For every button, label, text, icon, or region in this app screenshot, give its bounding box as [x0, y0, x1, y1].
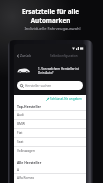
button[interactable]: Alfa Romeo: [14, 173, 86, 182]
staticText: Fiat: [17, 131, 23, 135]
staticText: Individuelle Fahrzeugauswahl: [1, 26, 103, 31]
staticText: Zurück: [20, 53, 31, 58]
button[interactable]: Hersteller suchen: [17, 81, 83, 90]
staticText: Selbstkonfiguration: [50, 54, 78, 58]
button[interactable]: Fiat: [14, 128, 86, 137]
staticText: Ersatzteile für alle Automarken: [0, 7, 102, 25]
button[interactable]: Seat: [14, 137, 86, 146]
staticText: Top-Hersteller: [17, 104, 41, 109]
staticText: Seat: [17, 140, 24, 144]
button[interactable]: Zurück: [16, 53, 31, 58]
staticText: Alfa Romeo: [17, 176, 35, 180]
staticText: Hersteller suchen: [25, 84, 52, 88]
button[interactable]: Audi: [14, 110, 86, 119]
button[interactable]: Volkswagen: [14, 146, 86, 155]
staticText: A: [17, 168, 20, 172]
staticText: 1. Von welchem Hersteller ist Dein Auto?: [38, 67, 79, 75]
staticText: Audi: [17, 113, 24, 117]
staticText: Alle Hersteller: [17, 160, 42, 165]
staticText: Volkswagen: [17, 149, 35, 153]
button[interactable]: Schlüssel-Nr. angeben: [45, 96, 83, 102]
staticText: BMW: [17, 122, 25, 126]
staticText: Schlüssel-Nr. angeben: [50, 97, 82, 101]
button[interactable]: BMW: [14, 119, 86, 128]
